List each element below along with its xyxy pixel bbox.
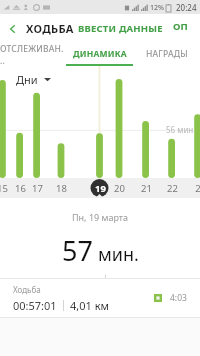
button[interactable]: НАГРАДЫ (133, 43, 200, 64)
button[interactable]: ОПЦИИ (167, 14, 200, 43)
button[interactable]: Back (0, 16, 26, 42)
button[interactable]: 18 (50, 178, 72, 198)
button[interactable]: 15 (0, 178, 13, 198)
button[interactable]: Дни (16, 72, 51, 87)
staticText: 4:03 (170, 292, 187, 304)
button[interactable]: Ходьба (0, 279, 200, 317)
staticText: ХОДЬБА (26, 21, 74, 36)
button[interactable]: 22 (161, 178, 183, 198)
button[interactable]: ВВЕСТИ ДАННЫЕ (74, 16, 167, 41)
staticText: 18 (56, 182, 67, 195)
staticText: 12% (150, 3, 164, 13)
staticText: НАГРАДЫ (146, 48, 188, 60)
staticText: 22 (167, 182, 178, 195)
staticText: Пн, 19 марта (72, 211, 128, 223)
button[interactable]: 20 (108, 178, 130, 198)
other: Route map (154, 294, 162, 302)
staticText: Ходьба (13, 284, 41, 295)
staticText: 2 (195, 182, 200, 195)
button[interactable]: ОТСЛЕЖИВАН... (0, 43, 66, 64)
staticText: Дни (16, 72, 38, 87)
staticText: ОПЦИИ (173, 20, 193, 37)
button[interactable]: 19 (89, 178, 111, 198)
staticText: 20 (114, 182, 125, 195)
staticText: 17 (32, 182, 43, 195)
staticText: ОТСЛЕЖИВАН... (0, 43, 66, 64)
staticText: 57 (62, 232, 93, 269)
staticText: 21 (141, 182, 152, 195)
button[interactable]: 17 (26, 178, 48, 198)
button[interactable]: 16 (9, 178, 31, 198)
staticText: 4,01 км (70, 298, 109, 313)
button[interactable]: 21 (135, 178, 157, 198)
staticText: 00:57:01 (13, 298, 57, 313)
staticText: ВВЕСТИ ДАННЫЕ (78, 22, 163, 35)
staticText: 20:24 (176, 2, 197, 13)
button[interactable]: 2 (187, 178, 200, 198)
staticText: 19 (95, 182, 106, 195)
staticText: 16 (15, 182, 26, 195)
button[interactable]: ДИНАМИКА (66, 43, 133, 64)
staticText: мин. (98, 242, 139, 267)
staticText: ДИНАМИКА (73, 48, 127, 60)
staticText: 56 мин. (166, 124, 196, 135)
staticText: 15 (0, 182, 8, 195)
